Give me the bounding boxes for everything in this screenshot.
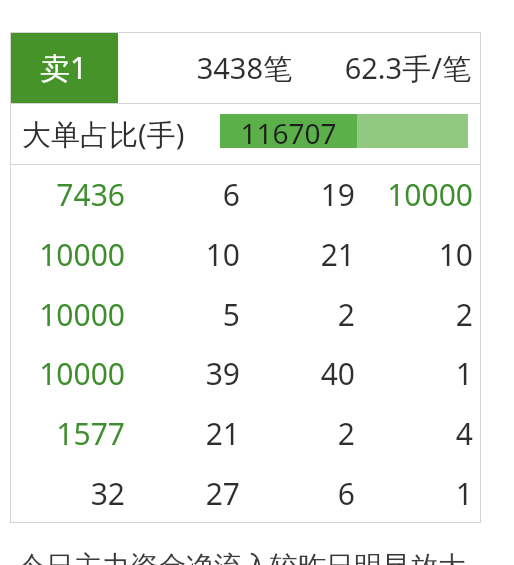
staticText: 10: [125, 234, 240, 275]
staticText: 10000: [355, 174, 473, 215]
button[interactable]: 7436: [10, 164, 481, 224]
staticText: 5: [125, 294, 240, 335]
staticText: 今日主力资金净流入较昨日明显放大: [18, 549, 466, 565]
button[interactable]: 卖1: [10, 32, 481, 103]
staticText: 10000: [14, 294, 125, 335]
button[interactable]: 10000: [10, 343, 481, 403]
staticText: 40: [240, 353, 355, 394]
button[interactable]: 卖1: [10, 32, 118, 103]
staticText: 2: [355, 294, 473, 335]
staticText: 21: [125, 413, 240, 454]
staticText: 62.3手/笔: [305, 48, 471, 88]
staticText: 6: [240, 473, 355, 514]
button[interactable]: 10000: [10, 224, 481, 284]
staticText: 1: [355, 473, 473, 514]
staticText: 大单占比(手): [22, 114, 185, 154]
staticText: 1577: [14, 413, 125, 454]
staticText: 39: [125, 353, 240, 394]
staticText: 7436: [14, 174, 125, 215]
staticText: 10: [355, 234, 473, 275]
staticText: 10000: [14, 234, 125, 275]
button[interactable]: 10000: [10, 284, 481, 344]
staticText: 6: [125, 174, 240, 215]
staticText: 1: [355, 353, 473, 394]
staticText: 27: [125, 473, 240, 514]
staticText: 卖1: [40, 47, 88, 88]
button[interactable]: 32: [10, 463, 481, 523]
staticText: 19: [240, 174, 355, 215]
staticText: 32: [14, 473, 125, 514]
staticText: 10000: [14, 353, 125, 394]
button[interactable]: 大单占比(手): [10, 103, 481, 164]
staticText: 2: [240, 294, 355, 335]
staticText: 4: [355, 413, 473, 454]
staticText: 21: [240, 234, 355, 275]
staticText: 3438笔: [150, 48, 292, 88]
staticText: 2: [240, 413, 355, 454]
staticText: 116707: [220, 114, 357, 148]
button[interactable]: 1577: [10, 403, 481, 463]
